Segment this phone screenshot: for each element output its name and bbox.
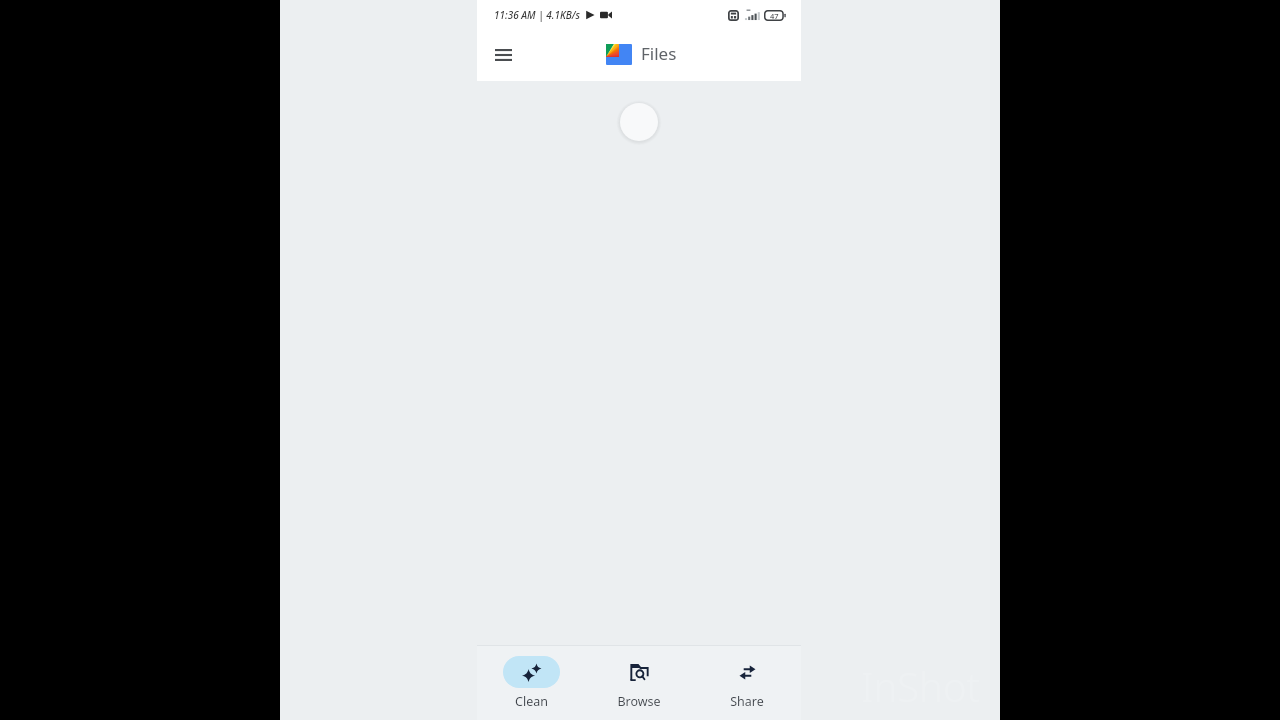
- staticText: 11:36 AM | 4.1KB/s: [494, 8, 581, 22]
- button[interactable]: Open navigation menu: [487, 39, 519, 71]
- button[interactable]: Clean: [477, 646, 585, 720]
- button[interactable]: Share: [693, 646, 801, 720]
- staticText: Share: [730, 693, 764, 710]
- staticText: 47: [770, 11, 779, 21]
- button[interactable]: Browse: [585, 646, 693, 720]
- staticText: Clean: [515, 693, 548, 710]
- staticText: Files: [641, 42, 677, 65]
- staticText: Browse: [617, 693, 661, 710]
